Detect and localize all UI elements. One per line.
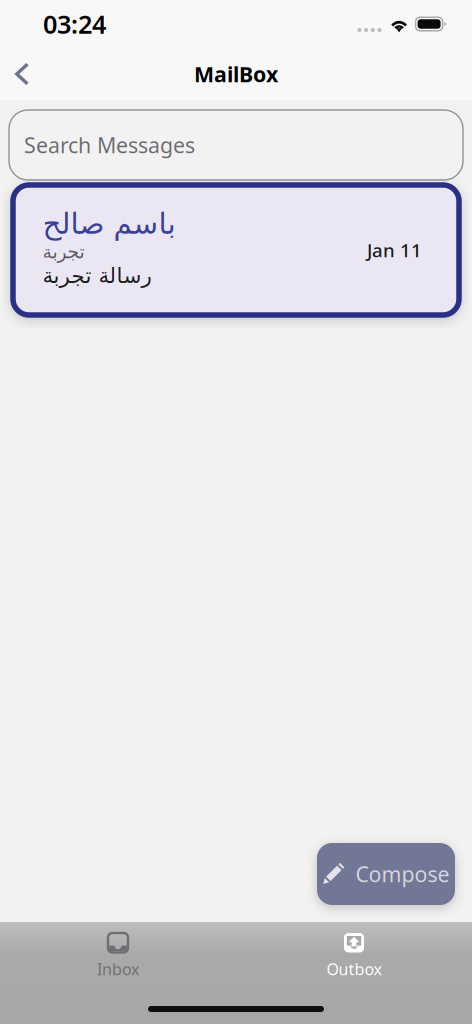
button[interactable]: Back [0,52,44,96]
button[interactable]: باسم صالح [13,185,459,315]
staticText: MailBox [194,60,278,88]
button[interactable]: Inbox [0,933,236,979]
staticText: 03:24 [43,7,106,41]
staticText: Inbox [97,958,139,980]
button[interactable]: Search Messages [9,110,463,180]
button[interactable]: Outbox [236,933,472,979]
staticText: رسالة تجربة [42,263,151,288]
staticText: Outbox [326,958,381,980]
button[interactable]: Compose [317,843,455,905]
staticText: باسم صالح [42,207,175,240]
staticText: Compose [355,860,449,888]
staticText: Jan 11 [367,238,422,262]
staticText: Search Messages [24,131,195,159]
staticText: تجربة [42,241,84,262]
